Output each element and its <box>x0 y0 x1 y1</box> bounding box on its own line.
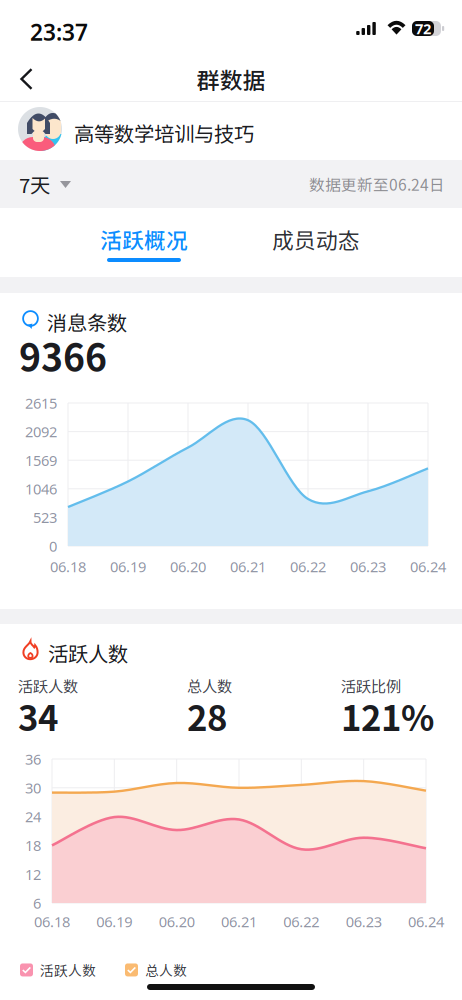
button[interactable]: 7天 <box>0 160 100 208</box>
staticText: 活跃概况 <box>100 223 188 255</box>
staticText: 30 <box>25 778 41 798</box>
staticText: 数据更新至06.24日 <box>309 173 445 195</box>
staticText: 28 <box>187 691 227 741</box>
staticText: 12 <box>25 864 41 884</box>
staticText: 23:37 <box>30 17 88 47</box>
staticText: 06.23 <box>350 557 386 576</box>
button[interactable]: Back <box>0 56 54 101</box>
staticText: 活跃比例 <box>341 674 401 697</box>
staticText: 2092 <box>25 422 57 441</box>
staticText: 06.18 <box>50 557 86 576</box>
staticText: 总人数 <box>145 960 187 980</box>
staticText: 高等数学培训与技巧 <box>74 118 254 147</box>
staticText: 34 <box>18 691 58 741</box>
button[interactable]: 成员动态 <box>230 208 402 277</box>
staticText: 06.24 <box>410 557 446 576</box>
staticText: 6 <box>33 893 41 913</box>
staticText: 活跃人数 <box>40 960 96 980</box>
staticText: 06.21 <box>230 557 266 576</box>
staticText: 9366 <box>19 328 107 382</box>
staticText: 群数据 <box>196 62 265 95</box>
staticText: 7天 <box>19 169 50 199</box>
staticText: 24 <box>25 807 41 826</box>
staticText: 06.24 <box>408 912 444 931</box>
staticText: 06.20 <box>170 557 206 576</box>
staticText: 1569 <box>25 450 57 470</box>
staticText: 121% <box>341 691 434 741</box>
staticText: 72 <box>415 19 431 38</box>
button[interactable]: 活跃概况 <box>58 208 230 277</box>
staticText: 06.21 <box>221 912 257 931</box>
staticText: 06.19 <box>110 557 146 576</box>
staticText: 06.22 <box>283 912 319 931</box>
staticText: 成员动态 <box>272 223 360 255</box>
staticText: 18 <box>25 836 41 855</box>
staticText: 06.19 <box>96 912 132 931</box>
staticText: 活跃人数 <box>18 674 78 697</box>
staticText: 消息条数 <box>47 307 127 336</box>
staticText: 0 <box>49 536 57 556</box>
staticText: 06.20 <box>159 912 195 931</box>
staticText: 活跃人数 <box>48 638 128 667</box>
staticText: 06.23 <box>346 912 382 931</box>
staticText: 523 <box>33 508 57 527</box>
staticText: 06.18 <box>34 912 70 931</box>
staticText: 2615 <box>25 393 57 413</box>
staticText: 总人数 <box>187 674 232 697</box>
staticText: 06.22 <box>290 557 326 576</box>
staticText: 1046 <box>25 479 57 499</box>
staticText: 36 <box>25 749 41 769</box>
